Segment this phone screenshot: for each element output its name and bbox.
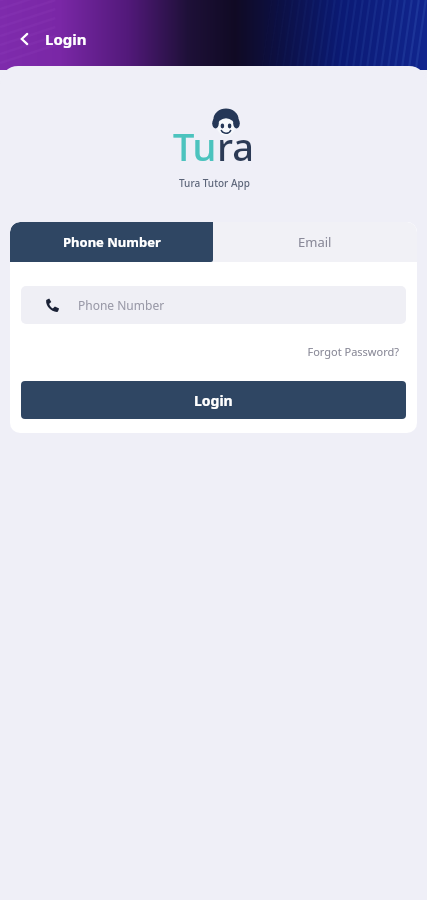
button[interactable]: Phone Number [21, 286, 406, 324]
staticText: ra [217, 120, 255, 172]
staticText: Phone Number [78, 297, 165, 313]
staticText: Email [298, 233, 332, 251]
staticText: Tura Tutor App [179, 176, 250, 190]
staticText: Login [194, 391, 233, 410]
button[interactable]: Email [213, 222, 417, 262]
button[interactable]: Back [10, 24, 40, 54]
staticText: Login [45, 29, 87, 49]
staticText: Tu [173, 120, 217, 172]
staticText: Forgot Password? [307, 344, 399, 359]
staticText: Phone Number [63, 233, 161, 251]
button[interactable]: Phone Number [10, 222, 213, 262]
button[interactable]: Forgot Password? [303, 340, 403, 363]
button[interactable]: Login [21, 381, 406, 419]
